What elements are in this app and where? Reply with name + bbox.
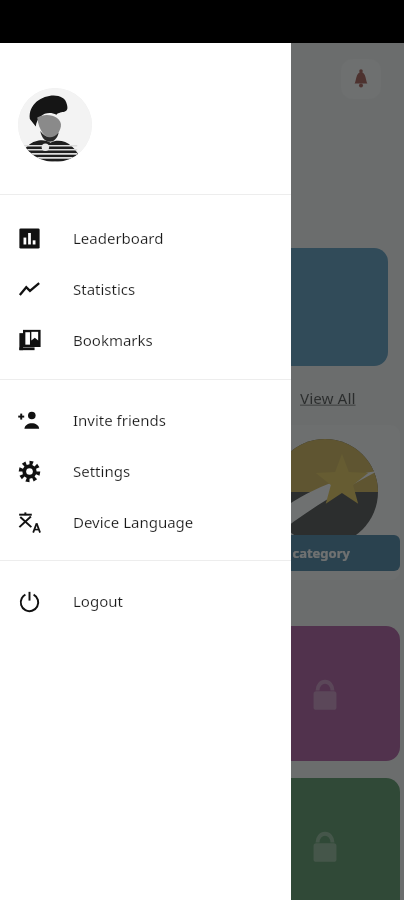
button[interactable]: Settings (0, 445, 291, 496)
button[interactable]: Leaderboard (0, 212, 291, 263)
staticText: Statistics (73, 279, 136, 299)
other: Statistics (18, 278, 41, 301)
other: Bookmarks (18, 329, 41, 352)
staticText: Settings (73, 461, 131, 481)
other: Settings (18, 460, 41, 483)
staticText: Logout (73, 591, 123, 611)
button[interactable]: Bookmarks (0, 314, 291, 365)
button[interactable] (16, 248, 388, 366)
staticText: Invite friends (73, 410, 166, 430)
button[interactable]: View All (300, 388, 356, 408)
staticText: Device Language (73, 512, 194, 532)
button[interactable]: new category (250, 425, 400, 580)
staticText: Leaderboard (73, 228, 164, 248)
button[interactable]: Device Language (0, 496, 291, 547)
other: Leaderboard (18, 227, 41, 250)
button[interactable]: Logout (0, 575, 291, 626)
button[interactable] (250, 778, 400, 900)
staticText: new category (262, 544, 350, 562)
staticText: View All (300, 388, 356, 408)
button[interactable]: Notifications (341, 59, 381, 99)
button[interactable]: Profile photo (18, 88, 92, 162)
other: Logout (18, 590, 41, 613)
button[interactable]: Statistics (0, 263, 291, 314)
button[interactable]: Invite friends (0, 394, 291, 445)
button[interactable] (250, 626, 400, 761)
staticText: Bookmarks (73, 330, 153, 350)
other: Device Language (18, 511, 41, 534)
other: Invite friends (18, 409, 41, 432)
